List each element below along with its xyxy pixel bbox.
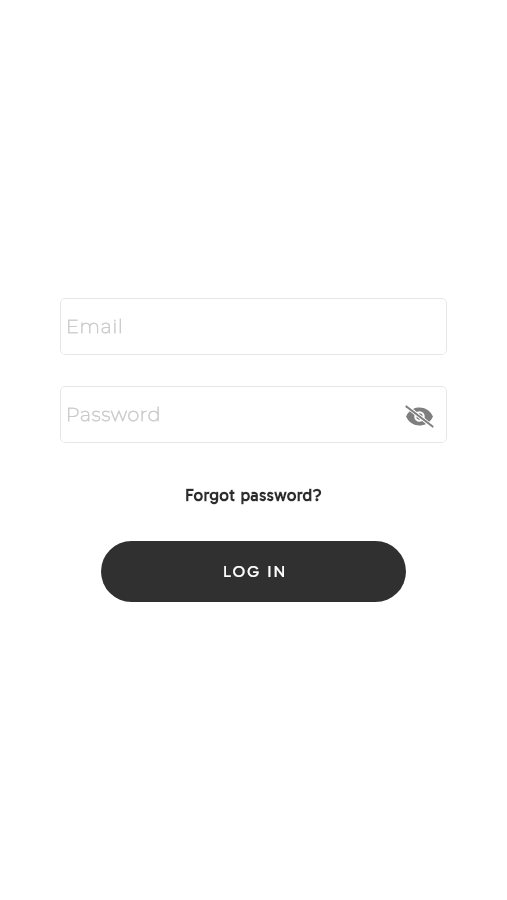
staticText: LOG IN: [223, 562, 288, 581]
button[interactable]: Show password: [402, 398, 436, 432]
staticText: Email: [66, 315, 124, 338]
button[interactable]: Password: [60, 386, 447, 443]
staticText: Password: [66, 403, 162, 426]
button[interactable]: Email: [60, 298, 447, 355]
button[interactable]: Forgot password?: [179, 483, 329, 507]
button[interactable]: LOG IN: [101, 541, 406, 602]
